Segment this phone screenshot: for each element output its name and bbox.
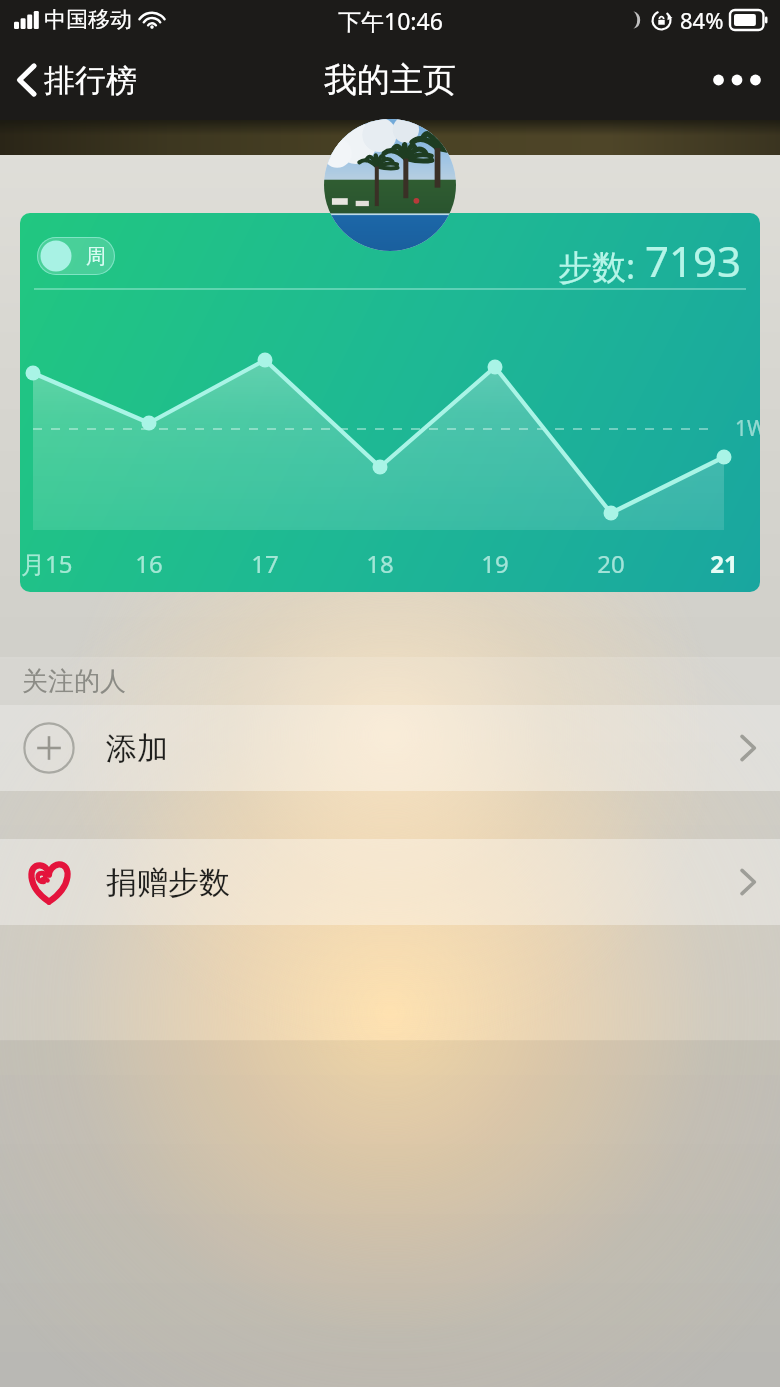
staticText: 7193 bbox=[645, 232, 742, 289]
staticText: 17 bbox=[247, 547, 283, 580]
staticText: 19 bbox=[477, 547, 513, 580]
staticText: 关注的人 bbox=[22, 665, 126, 698]
staticText: 11月15 bbox=[20, 547, 83, 580]
staticText: 步数: bbox=[558, 243, 636, 289]
button[interactable]: 周 bbox=[37, 237, 115, 275]
staticText: 1W bbox=[735, 414, 760, 443]
staticText: 84% bbox=[680, 5, 724, 35]
staticText: 下午10:46 bbox=[338, 5, 443, 36]
button[interactable]: 捐赠步数 bbox=[0, 839, 780, 925]
staticText: 排行榜 bbox=[44, 61, 137, 100]
staticText: 16 bbox=[131, 547, 167, 580]
button[interactable]: 周 bbox=[20, 213, 760, 592]
staticText: 21 bbox=[706, 547, 742, 580]
button[interactable]: Profile photo bbox=[324, 119, 456, 251]
staticText: 周 bbox=[86, 244, 106, 269]
button[interactable]: 添加 bbox=[0, 705, 780, 791]
staticText: 捐赠步数 bbox=[106, 863, 230, 902]
staticText: 中国移动 bbox=[44, 6, 132, 34]
staticText: 20 bbox=[593, 547, 629, 580]
staticText: 18 bbox=[362, 547, 398, 580]
button[interactable]: 排行榜 bbox=[0, 40, 153, 120]
button[interactable]: More options bbox=[694, 40, 780, 120]
staticText: 我的主页 bbox=[324, 59, 456, 101]
staticText: 添加 bbox=[106, 729, 168, 768]
